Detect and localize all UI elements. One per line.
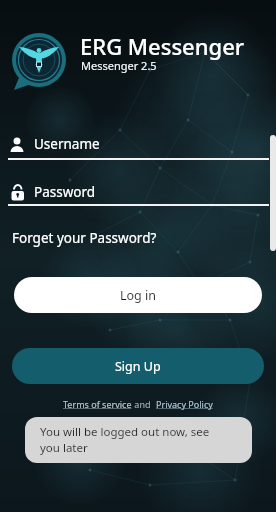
staticText: and <box>132 398 156 410</box>
button[interactable]: Log in <box>14 277 262 313</box>
button[interactable]: Privacy Policy <box>156 398 213 410</box>
staticText: ERG Messenger <box>80 31 245 61</box>
staticText: Sign Up <box>115 358 161 375</box>
staticText: Messenger 2.5 <box>81 58 157 73</box>
staticText: Password <box>34 183 96 201</box>
button[interactable]: Username <box>0 131 276 161</box>
staticText: Username <box>34 135 100 153</box>
button[interactable]: Password <box>0 178 276 208</box>
staticText: You will be logged out now, see you late… <box>40 424 210 456</box>
button[interactable]: Terms of service <box>63 398 132 410</box>
button[interactable]: Sign Up <box>12 348 264 384</box>
staticText: Log in <box>120 287 157 304</box>
button[interactable]: Forget your Password? <box>12 229 157 247</box>
